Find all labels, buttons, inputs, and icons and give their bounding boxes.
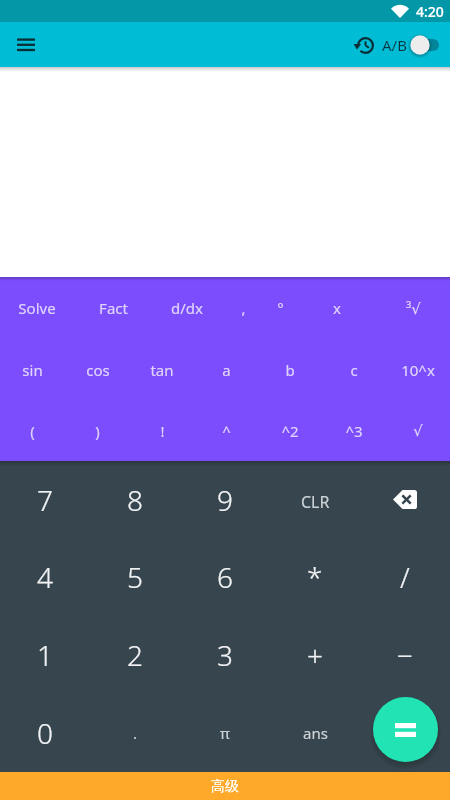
button[interactable]: 9 — [180, 461, 270, 538]
staticText: 高级 — [211, 778, 239, 796]
staticText: b — [285, 360, 295, 380]
staticText: 6 — [217, 558, 233, 596]
button[interactable]: ( — [0, 400, 65, 461]
staticText: sin — [22, 360, 43, 380]
staticText: 10^x — [401, 360, 435, 380]
staticText: − — [397, 636, 413, 674]
staticText: ^2 — [281, 421, 299, 441]
button[interactable]: ) — [65, 400, 130, 461]
staticText: ^ — [222, 421, 231, 441]
button[interactable]: 8 — [90, 461, 180, 538]
staticText: ans — [303, 723, 328, 743]
button[interactable]: / — [360, 538, 450, 616]
button[interactable]: + — [270, 616, 360, 694]
staticText: 0 — [37, 714, 53, 752]
button[interactable]: Fact — [87, 277, 139, 339]
button[interactable]: tan — [130, 339, 194, 400]
button[interactable]: 6 — [180, 538, 270, 616]
staticText: tan — [150, 360, 174, 380]
button[interactable]: History — [354, 34, 376, 56]
button[interactable]: ^ — [194, 400, 258, 461]
button[interactable]: cos — [65, 339, 130, 400]
staticText: ° — [277, 298, 284, 318]
button[interactable]: c — [322, 339, 386, 400]
button[interactable]: 高级 — [0, 772, 450, 800]
button[interactable]: ans — [270, 694, 360, 772]
button[interactable]: Backspace — [360, 461, 450, 538]
staticText: c — [350, 360, 358, 380]
staticText: 3 — [217, 636, 233, 674]
button[interactable]: 4 — [0, 538, 90, 616]
staticText: / — [400, 558, 410, 596]
staticText: Solve — [18, 298, 56, 318]
staticText: √ — [413, 422, 423, 439]
button[interactable]: 0 — [0, 694, 90, 772]
staticText: ) — [95, 421, 100, 441]
staticText: * — [307, 558, 323, 596]
button[interactable]: 1 — [0, 616, 90, 694]
button[interactable]: √ — [386, 400, 450, 461]
button[interactable]: Solve — [11, 277, 63, 339]
staticText: cos — [86, 360, 110, 380]
staticText: Fact — [99, 298, 128, 318]
button[interactable]: sin — [0, 339, 65, 400]
button[interactable]: Menu — [9, 28, 43, 62]
button[interactable]: π — [180, 694, 270, 772]
button[interactable]: 3 — [180, 616, 270, 694]
staticText: π — [220, 723, 230, 743]
staticText: 4:20 — [416, 2, 444, 21]
staticText: + — [307, 636, 323, 674]
staticText: ³√ — [406, 298, 421, 318]
staticText: a — [222, 360, 231, 380]
staticText: x — [333, 298, 341, 318]
staticText: ^3 — [345, 421, 363, 441]
staticText: ! — [160, 421, 165, 441]
staticText: 8 — [127, 481, 143, 519]
staticText: 7 — [37, 481, 53, 519]
button[interactable]: d/dx — [161, 277, 213, 339]
button[interactable]: b — [258, 339, 322, 400]
button[interactable]: 5 — [90, 538, 180, 616]
button[interactable]: x — [311, 277, 363, 339]
staticText: 4 — [37, 558, 53, 596]
staticText: . — [133, 723, 138, 743]
button[interactable]: 7 — [0, 461, 90, 538]
staticText: 2 — [127, 636, 143, 674]
button[interactable]: Toggle A/B mode — [409, 34, 439, 56]
staticText: ( — [30, 421, 35, 441]
staticText: CLR — [301, 491, 330, 513]
staticText: 5 — [127, 558, 143, 596]
button[interactable]: ! — [130, 400, 194, 461]
button[interactable]: , — [217, 277, 269, 339]
button[interactable]: ^2 — [258, 400, 322, 461]
button[interactable]: 2 — [90, 616, 180, 694]
staticText: d/dx — [171, 298, 203, 318]
button[interactable]: Equals — [373, 697, 438, 762]
staticText: 9 — [217, 481, 233, 519]
button[interactable]: ° — [254, 277, 306, 339]
staticText: A/B — [382, 35, 407, 55]
button[interactable]: a — [194, 339, 258, 400]
staticText: 1 — [37, 636, 53, 674]
button[interactable]: − — [360, 616, 450, 694]
staticText: , — [241, 298, 246, 318]
button[interactable]: ³√ — [387, 277, 439, 339]
button[interactable]: ^3 — [322, 400, 386, 461]
button[interactable]: 10^x — [386, 339, 450, 400]
button[interactable]: CLR — [270, 461, 360, 538]
button[interactable]: * — [270, 538, 360, 616]
